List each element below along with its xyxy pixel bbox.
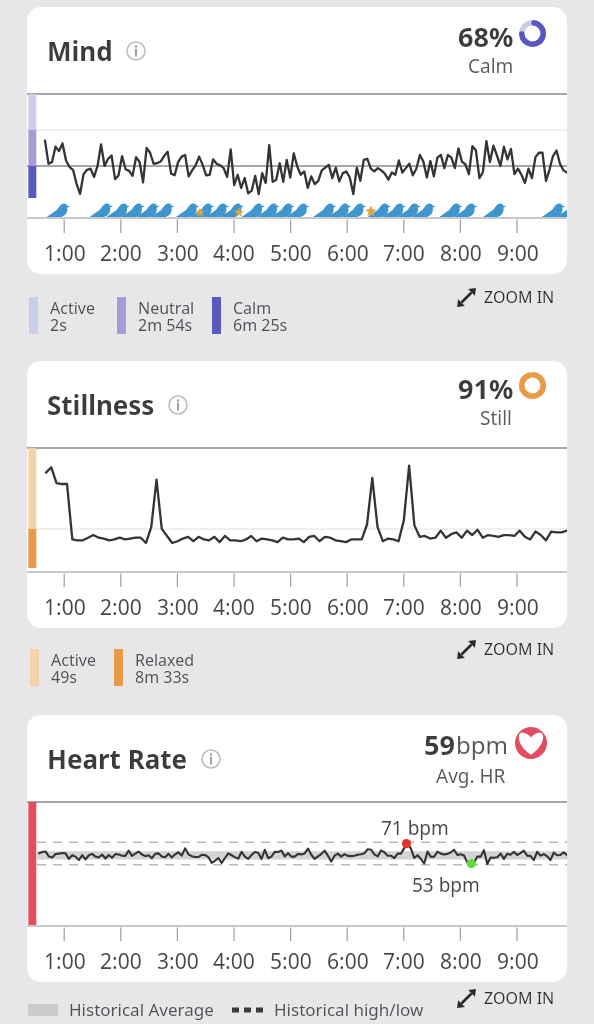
button[interactable]: Mind — [27, 7, 567, 274]
button[interactable]: Zoom in — [456, 638, 555, 660]
staticText: Historical Average — [69, 998, 214, 1021]
other: Info — [201, 749, 221, 769]
staticText: 71 bpm — [381, 815, 449, 841]
staticText: 8:00 — [440, 947, 482, 976]
other: Zoom in — [456, 287, 477, 308]
button[interactable]: Stillness — [27, 361, 567, 628]
staticText: 4:00 — [213, 593, 255, 622]
staticText: 7:00 — [383, 947, 425, 976]
staticText: Mind — [47, 33, 113, 68]
staticText: ZOOM IN — [484, 638, 555, 660]
staticText: 5:00 — [270, 947, 312, 976]
staticText: Active 49s — [51, 649, 96, 688]
staticText: 4:00 — [213, 947, 255, 976]
staticText: 9:00 — [497, 947, 539, 976]
button[interactable]: Heart Rate — [27, 715, 567, 982]
staticText: 6:00 — [327, 947, 369, 976]
staticText: 2:00 — [100, 239, 142, 268]
button[interactable]: Zoom in — [456, 286, 555, 308]
staticText: 3:00 — [157, 947, 199, 976]
staticText: Neutral 2m 54s — [138, 297, 195, 336]
staticText: Calm — [468, 53, 514, 79]
staticText: Calm 6m 25s — [233, 297, 288, 336]
staticText: bpm — [456, 728, 508, 761]
other: Zoom in — [456, 639, 477, 660]
button[interactable]: Zoom in — [456, 987, 555, 1009]
staticText: Heart Rate — [47, 741, 188, 776]
staticText: 91% — [458, 370, 514, 407]
staticText: Historical high/low — [274, 998, 424, 1021]
staticText: 59 — [424, 726, 455, 763]
staticText: 8:00 — [440, 593, 482, 622]
staticText: Avg. HR — [436, 763, 506, 789]
staticText: ZOOM IN — [484, 987, 555, 1009]
other: Info — [168, 395, 188, 415]
staticText: 3:00 — [157, 593, 199, 622]
staticText: 2:00 — [100, 947, 142, 976]
staticText: 1:00 — [44, 593, 86, 622]
staticText: 7:00 — [383, 239, 425, 268]
staticText: 5:00 — [270, 239, 312, 268]
staticText: 6:00 — [327, 593, 369, 622]
staticText: ZOOM IN — [484, 286, 555, 308]
staticText: Relaxed 8m 33s — [135, 649, 195, 688]
staticText: Still — [480, 405, 512, 431]
other: Info — [126, 41, 146, 61]
staticText: 2:00 — [100, 593, 142, 622]
staticText: 8:00 — [440, 239, 482, 268]
staticText: 7:00 — [383, 593, 425, 622]
staticText: Active 2s — [50, 297, 95, 336]
staticText: 1:00 — [44, 239, 86, 268]
staticText: 1:00 — [44, 947, 86, 976]
staticText: 9:00 — [497, 239, 539, 268]
staticText: Stillness — [47, 387, 155, 422]
staticText: 9:00 — [497, 593, 539, 622]
staticText: 68% — [458, 18, 514, 55]
staticText: 4:00 — [213, 239, 255, 268]
staticText: 6:00 — [327, 239, 369, 268]
staticText: 3:00 — [157, 239, 199, 268]
staticText: 5:00 — [270, 593, 312, 622]
other: Zoom in — [456, 988, 477, 1009]
staticText: 53 bpm — [412, 872, 480, 898]
